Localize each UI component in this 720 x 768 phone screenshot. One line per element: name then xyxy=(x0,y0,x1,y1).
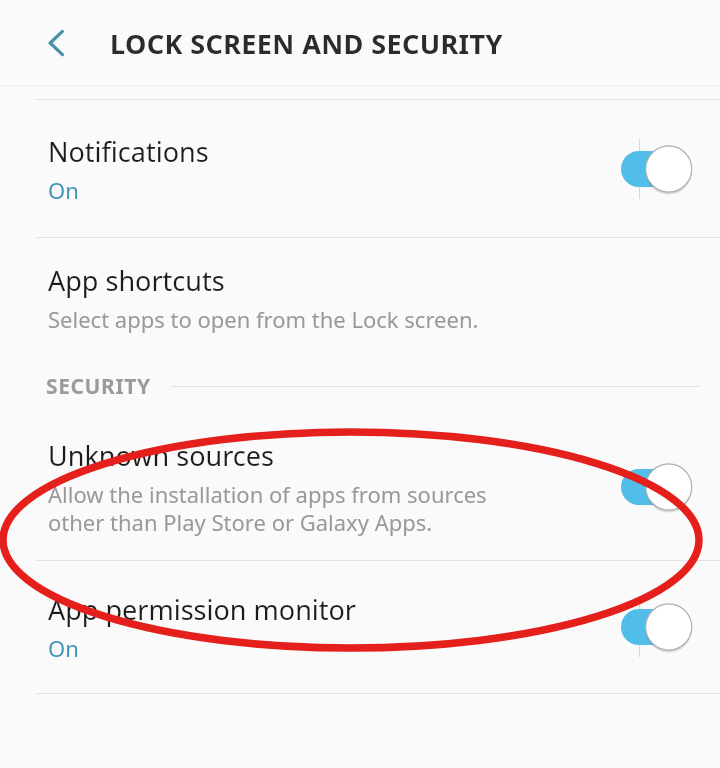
button[interactable]: App shortcuts xyxy=(0,238,720,358)
button[interactable]: Unknown sources xyxy=(0,414,720,560)
staticText: LOCK SCREEN AND SECURITY xyxy=(110,25,503,62)
staticText: App permission monitor xyxy=(48,591,357,628)
button[interactable]: Back xyxy=(28,14,86,72)
staticText: Notifications xyxy=(48,133,209,170)
button[interactable]: Toggle on xyxy=(612,462,692,512)
staticText: Unknown sources xyxy=(48,437,274,474)
staticText: Allow the installation of apps from sour… xyxy=(48,479,487,537)
button[interactable]: App permission monitor xyxy=(0,561,720,693)
button[interactable]: Toggle on xyxy=(612,144,692,194)
staticText: App shortcuts xyxy=(48,262,225,299)
staticText: Select apps to open from the Lock screen… xyxy=(48,304,479,334)
button[interactable]: Toggle on xyxy=(612,602,692,652)
staticText: SECURITY xyxy=(46,372,151,401)
button[interactable]: Notifications xyxy=(0,100,720,237)
staticText: On xyxy=(48,175,79,205)
staticText: On xyxy=(48,633,79,663)
